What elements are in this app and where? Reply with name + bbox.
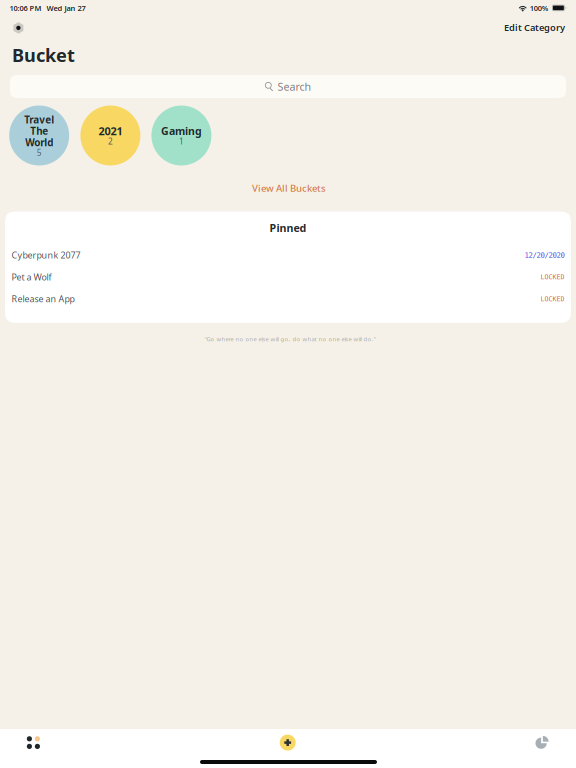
button[interactable]: Buckets bbox=[5, 726, 61, 760]
staticText: Pet a Wolf bbox=[11, 271, 51, 283]
staticText: Search bbox=[277, 79, 311, 94]
staticText: 5 bbox=[37, 147, 42, 158]
staticText: 12/20/2020 bbox=[524, 251, 564, 259]
staticText: Wed Jan 27 bbox=[46, 3, 85, 13]
button[interactable]: Pet a Wolf bbox=[5, 266, 571, 288]
staticText: LOCKED bbox=[540, 295, 564, 303]
staticText: Travel bbox=[24, 113, 54, 126]
staticText: 10:06 PM bbox=[9, 3, 41, 13]
button[interactable]: Statistics bbox=[515, 727, 571, 761]
staticText: World bbox=[25, 136, 53, 149]
staticText: Pinned bbox=[269, 220, 306, 235]
button[interactable]: Search bbox=[10, 75, 566, 98]
button[interactable]: Cyberpunk 2077 bbox=[5, 244, 571, 266]
staticText: The bbox=[30, 124, 48, 138]
staticText: Gaming bbox=[161, 124, 202, 138]
staticText: Bucket bbox=[12, 43, 75, 67]
button[interactable]: View All Buckets bbox=[229, 180, 349, 196]
staticText: 100% bbox=[530, 3, 549, 13]
button[interactable]: Travel bbox=[9, 105, 69, 165]
button[interactable]: Settings bbox=[7, 17, 29, 39]
staticText: "Go where no one else will go, do what n… bbox=[204, 335, 375, 343]
staticText: 1 bbox=[179, 136, 184, 147]
button[interactable]: 2021 bbox=[80, 105, 140, 165]
button[interactable]: Release an App bbox=[5, 288, 571, 310]
staticText: Release an App bbox=[11, 293, 74, 305]
staticText: Cyberpunk 2077 bbox=[11, 249, 80, 261]
staticText: Edit Category bbox=[504, 21, 565, 34]
button[interactable]: Add bucket bbox=[260, 726, 316, 760]
staticText: 2021 bbox=[98, 124, 122, 138]
button[interactable]: Gaming bbox=[151, 105, 211, 165]
staticText: 2 bbox=[108, 136, 113, 147]
staticText: LOCKED bbox=[540, 273, 564, 281]
staticText: View All Buckets bbox=[252, 182, 326, 194]
button[interactable]: Edit Category bbox=[499, 19, 565, 35]
